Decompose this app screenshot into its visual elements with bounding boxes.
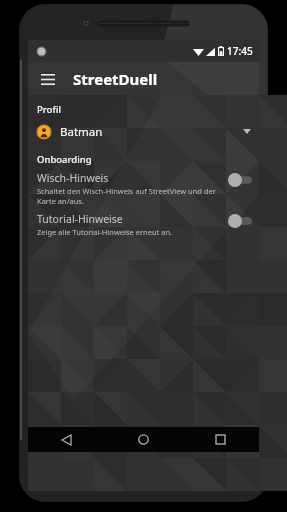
staticText: Wisch-Hinweis bbox=[37, 171, 109, 185]
button[interactable]: Home bbox=[105, 427, 182, 452]
button[interactable]: Tutorial-Hinweise toggle bbox=[228, 214, 252, 228]
staticText: 17:45 bbox=[227, 44, 253, 58]
button[interactable]: Tutorial-Hinweise bbox=[28, 209, 259, 240]
button[interactable]: Open navigation menu bbox=[32, 63, 64, 95]
staticText: Tutorial-Hinweise bbox=[37, 212, 123, 226]
staticText: Zeige alle Tutorial-Hinweise erneut an. bbox=[37, 227, 173, 237]
staticText: Batman bbox=[60, 124, 103, 140]
button[interactable]: Wisch-Hinweis toggle bbox=[228, 173, 252, 187]
staticText: Schaltet den Wisch-Hinweis auf StreetVie… bbox=[37, 186, 222, 206]
button[interactable]: Wisch-Hinweis bbox=[28, 168, 259, 209]
staticText: StreetDuell bbox=[73, 69, 158, 89]
button[interactable]: Back bbox=[28, 427, 105, 452]
button[interactable]: Recent apps bbox=[182, 427, 259, 452]
button[interactable]: Batman bbox=[28, 118, 259, 145]
staticText: Profil bbox=[37, 103, 61, 116]
staticText: Onboarding bbox=[37, 153, 92, 166]
